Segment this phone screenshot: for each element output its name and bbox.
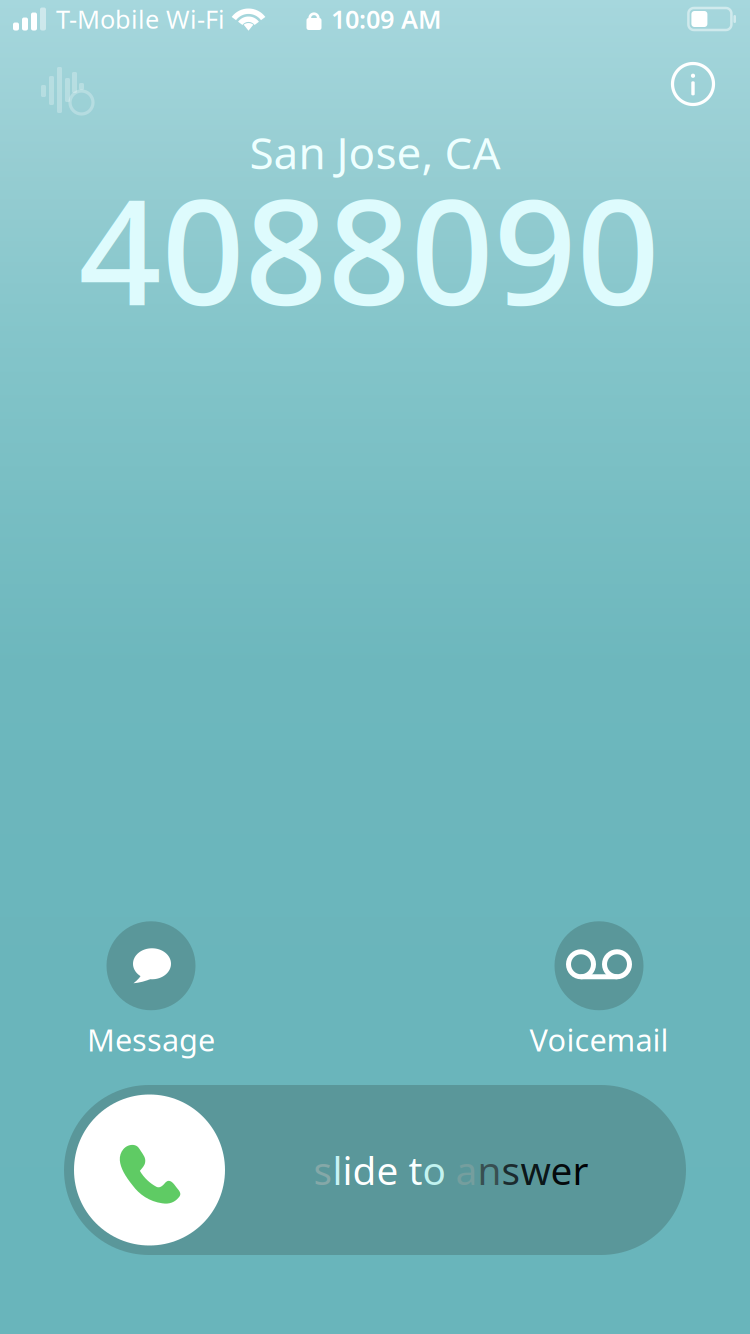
staticText: 4088090 (78, 152, 659, 345)
staticText: Message (87, 1019, 215, 1060)
staticText: d (352, 1144, 376, 1196)
staticText: l (332, 1144, 342, 1196)
button[interactable]: Voicemail (499, 921, 699, 1060)
staticText: e (376, 1144, 398, 1196)
staticText: a (455, 1144, 477, 1196)
button[interactable]: Message (51, 921, 251, 1060)
staticText: r (572, 1144, 588, 1196)
staticText: t (408, 1144, 422, 1196)
button[interactable]: s (64, 1085, 686, 1255)
staticText: T-Mobile Wi-Fi (56, 2, 225, 36)
staticText: s (313, 1144, 332, 1196)
staticText: e (550, 1144, 572, 1196)
staticText: o (422, 1144, 445, 1196)
staticText: n (477, 1144, 501, 1196)
staticText: s (501, 1144, 520, 1196)
button[interactable]: Call details (663, 54, 723, 114)
staticText: w (520, 1144, 550, 1196)
staticText: i (342, 1144, 352, 1196)
staticText: San Jose, CA (249, 123, 500, 181)
staticText: 10:09 AM (331, 2, 442, 36)
staticText: Voicemail (529, 1019, 668, 1060)
